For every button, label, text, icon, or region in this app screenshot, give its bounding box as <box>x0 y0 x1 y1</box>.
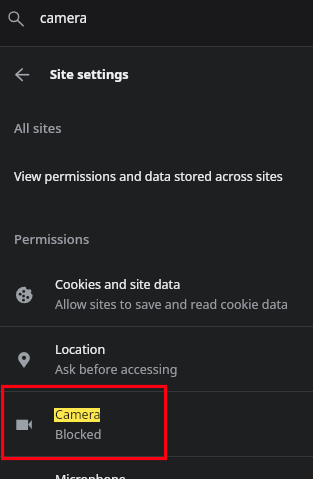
staticText: Camera <box>55 406 101 423</box>
staticText: camera <box>40 9 88 27</box>
staticText: Location <box>55 341 106 358</box>
staticText: Allow sites to save and read cookie data <box>55 296 288 313</box>
staticText: Permissions <box>14 230 90 248</box>
button[interactable]: Location <box>0 327 313 391</box>
staticText: Microphone <box>55 471 126 479</box>
staticText: All sites <box>14 119 62 137</box>
staticText: View permissions and data stored across … <box>14 168 283 185</box>
button[interactable]: Cookies and site data <box>0 262 313 326</box>
button[interactable]: camera <box>34 0 313 46</box>
button[interactable]: View permissions and data stored across … <box>0 157 313 195</box>
staticText: Cookies and site data <box>55 276 181 293</box>
staticText: Blocked <box>55 426 102 443</box>
staticText: Ask before accessing <box>55 361 178 378</box>
button[interactable]: Back <box>4 51 40 87</box>
staticText: Site settings <box>50 65 129 82</box>
button[interactable]: Search <box>1 5 33 37</box>
button[interactable]: Microphone <box>0 457 313 479</box>
button[interactable]: Camera <box>0 392 313 456</box>
